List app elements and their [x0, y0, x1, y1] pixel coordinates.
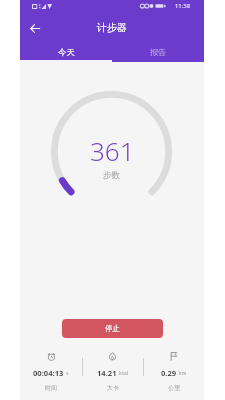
staticText: 时间 [45, 384, 57, 392]
staticText: 大卡 [107, 384, 119, 392]
staticText: 361 [90, 133, 135, 168]
button[interactable]: 停止 [62, 319, 163, 338]
button[interactable]: 今天 [20, 43, 112, 62]
staticText: 计步器 [97, 21, 127, 34]
staticText: 11:38 [175, 2, 191, 10]
button[interactable]: 0.29 [143, 350, 204, 395]
staticText: 步数 [103, 170, 121, 181]
staticText: s [66, 370, 69, 377]
staticText: 今天 [58, 47, 75, 57]
staticText: kcal [119, 370, 129, 377]
button[interactable]: 报告 [112, 43, 204, 62]
button[interactable]: 00:04:13 [20, 350, 82, 395]
button[interactable]: Back [25, 18, 45, 38]
staticText: km [179, 370, 187, 377]
staticText: 停止 [105, 324, 120, 333]
button[interactable]: 14.21 [82, 350, 143, 395]
staticText: 00:04:13 [33, 368, 64, 378]
staticText: 报告 [150, 47, 167, 57]
staticText: 14.21 [97, 368, 117, 378]
staticText: 公里 [168, 384, 180, 392]
staticText: 0.29 [161, 368, 177, 378]
